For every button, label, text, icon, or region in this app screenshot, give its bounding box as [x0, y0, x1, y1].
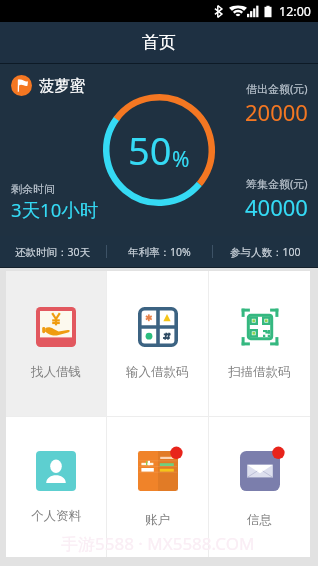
staticText: 筹集金额(元)	[246, 176, 308, 191]
staticText: 账户	[145, 512, 170, 528]
staticText: 手游5588 · MX5588.COM	[61, 532, 255, 555]
staticText: 参与人数：100	[230, 245, 301, 259]
staticText: 找人借钱	[31, 364, 81, 380]
staticText: %	[172, 145, 190, 174]
staticText: 3天10小时	[11, 197, 99, 222]
button[interactable]: 扫描借款码	[209, 271, 310, 416]
staticText: 40000	[245, 192, 308, 222]
button[interactable]: 账户	[107, 417, 208, 557]
button[interactable]: 输入借款码	[107, 271, 208, 416]
staticText: 剩余时间	[11, 182, 55, 196]
staticText: 首页	[142, 32, 176, 53]
staticText: 菠萝蜜	[39, 76, 86, 96]
staticText: 借出金额(元)	[246, 81, 308, 96]
staticText: 年利率：10%	[128, 245, 191, 259]
staticText: 扫描借款码	[228, 364, 291, 380]
button[interactable]: 信息	[209, 417, 310, 557]
button[interactable]: 找人借钱	[6, 271, 106, 416]
button[interactable]: 个人资料	[6, 417, 106, 557]
staticText: 还款时间：30天	[15, 245, 91, 259]
staticText: 50	[128, 124, 172, 176]
staticText: 个人资料	[31, 508, 81, 524]
staticText: 20000	[245, 97, 308, 127]
staticText: 信息	[247, 512, 272, 528]
staticText: 12:00	[279, 3, 311, 20]
staticText: 输入借款码	[126, 364, 189, 380]
